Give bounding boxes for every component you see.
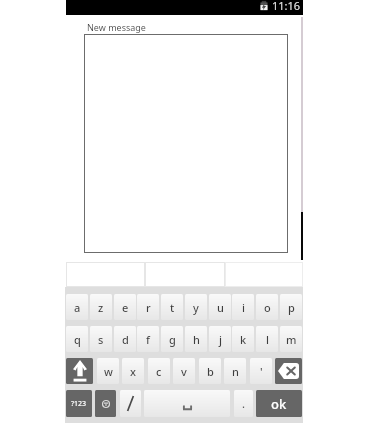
button[interactable]: f — [137, 326, 159, 352]
staticText: d — [122, 332, 129, 347]
staticText: z — [98, 300, 104, 315]
staticText: j — [219, 332, 222, 347]
staticText: w — [104, 364, 113, 379]
button[interactable]: i — [232, 294, 254, 320]
staticText: i — [242, 300, 245, 315]
button[interactable]: k — [232, 326, 254, 352]
staticText: o — [264, 300, 271, 315]
button[interactable]: r — [137, 294, 159, 320]
button[interactable] — [66, 262, 145, 287]
button[interactable]: x — [122, 358, 144, 384]
staticText: ?123 — [71, 399, 87, 409]
button[interactable]: ok — [256, 390, 302, 417]
button[interactable]: l — [256, 326, 278, 352]
button[interactable]: p — [280, 294, 302, 320]
staticText: g — [169, 332, 176, 347]
button[interactable]: d — [114, 326, 136, 352]
button[interactable]: m — [280, 326, 302, 352]
staticText: n — [232, 364, 239, 379]
staticText: u — [217, 300, 224, 315]
button[interactable]: s — [90, 326, 112, 352]
staticText: s — [98, 332, 104, 347]
staticText: ' — [260, 364, 263, 379]
button[interactable]: q — [66, 326, 88, 352]
button[interactable]: z — [90, 294, 112, 320]
staticText: e — [122, 300, 129, 315]
staticText: l — [266, 332, 269, 347]
staticText: r — [146, 300, 151, 315]
button[interactable]: g — [161, 326, 183, 352]
staticText: h — [193, 332, 200, 347]
button[interactable]: Space — [144, 390, 230, 417]
staticText: x — [130, 364, 136, 379]
button[interactable]: b — [199, 358, 221, 384]
button[interactable] — [225, 262, 303, 287]
staticText: q — [74, 332, 81, 347]
staticText: b — [207, 364, 214, 379]
button[interactable]: w — [97, 358, 119, 384]
button[interactable]: t — [161, 294, 183, 320]
button[interactable]: u — [209, 294, 231, 320]
staticText: p — [288, 300, 295, 315]
button[interactable] — [145, 262, 225, 287]
button[interactable]: Backspace — [275, 358, 302, 384]
button[interactable]: ' — [250, 358, 272, 384]
staticText: k — [240, 332, 247, 347]
button[interactable] — [84, 34, 288, 253]
staticText: a — [74, 300, 81, 315]
button[interactable]: . — [234, 390, 253, 417]
button[interactable]: o — [256, 294, 278, 320]
staticText: m — [286, 332, 297, 347]
button[interactable]: y — [185, 294, 207, 320]
button[interactable]: n — [224, 358, 246, 384]
button[interactable]: h — [185, 326, 207, 352]
staticText: New message — [87, 21, 146, 33]
staticText: v — [181, 364, 187, 379]
staticText: t — [170, 300, 175, 315]
button[interactable]: e — [114, 294, 136, 320]
button[interactable]: c — [148, 358, 170, 384]
staticText: y — [193, 300, 199, 315]
staticText: f — [146, 332, 150, 347]
button[interactable]: Shift — [66, 358, 93, 384]
button[interactable]: j — [209, 326, 231, 352]
button[interactable]: a — [66, 294, 88, 320]
staticText: c — [156, 364, 162, 379]
button[interactable]: Emoji — [95, 390, 116, 417]
staticText: . — [242, 396, 245, 411]
staticText: ok — [271, 395, 287, 413]
staticText: 11:16 — [272, 0, 301, 13]
button[interactable]: ?123 — [66, 390, 92, 417]
button[interactable] — [120, 390, 141, 417]
button[interactable]: v — [173, 358, 195, 384]
